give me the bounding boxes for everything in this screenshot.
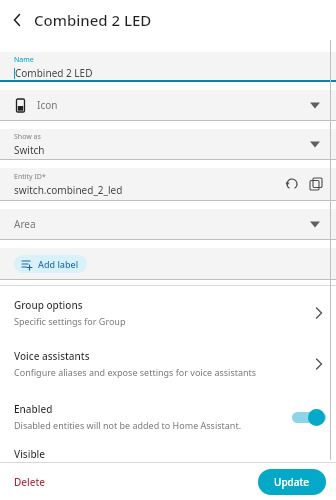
staticText: Show as <box>14 132 41 142</box>
staticText: Specific settings for Group <box>14 315 126 327</box>
staticText: Hidden entities will not be included in … <box>14 465 292 500</box>
button[interactable]: Add label <box>14 255 87 273</box>
staticText: Update <box>274 475 310 489</box>
staticText: Entity ID* <box>14 172 46 182</box>
button[interactable]: Group options <box>0 286 336 337</box>
button[interactable]: Back <box>0 3 34 37</box>
button[interactable]: Icon <box>0 90 336 120</box>
staticText: Icon <box>37 98 58 112</box>
button[interactable]: Entity ID* <box>0 168 336 200</box>
button[interactable]: Name <box>0 52 336 80</box>
button[interactable]: Area <box>0 209 336 239</box>
staticText: Combined 2 LED <box>15 66 93 80</box>
staticText: Switch <box>14 143 45 157</box>
button[interactable]: Delete <box>10 471 50 493</box>
staticText: Combined 2 LED <box>34 10 152 30</box>
button[interactable]: Reset entity ID <box>280 172 304 196</box>
button[interactable]: Visible <box>0 447 336 500</box>
staticText: Enabled <box>14 402 53 416</box>
staticText: Visible <box>14 447 46 461</box>
staticText: Add label <box>38 258 79 270</box>
staticText: Delete <box>14 475 46 489</box>
button[interactable]: Add label <box>0 248 336 279</box>
staticText: switch.combined_2_led <box>14 183 123 197</box>
staticText: Area <box>14 217 36 231</box>
button[interactable]: Update <box>258 469 326 495</box>
staticText: Name <box>14 55 34 65</box>
button[interactable]: Copy entity ID <box>304 172 328 196</box>
button[interactable]: Voice assistants <box>0 345 336 388</box>
button[interactable]: Show as <box>0 129 336 159</box>
staticText: Disabled entities will not be added to H… <box>14 419 242 431</box>
staticText: Voice assistants <box>14 349 90 363</box>
staticText: Configure aliases and expose settings fo… <box>14 366 257 378</box>
button[interactable]: Enabled <box>0 398 336 435</box>
staticText: Group options <box>14 298 83 312</box>
